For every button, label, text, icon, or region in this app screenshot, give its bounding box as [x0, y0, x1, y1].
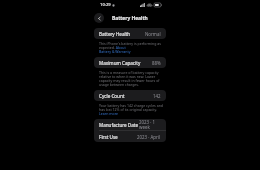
staticText: 2023 · April [137, 134, 161, 140]
staticText: Battery Health [112, 15, 148, 22]
button[interactable]: Manufacture Date [94, 119, 166, 130]
button[interactable]: Back [94, 13, 104, 23]
staticText: Manufacture Date [99, 122, 139, 128]
staticText: This is a measure of battery capacity re… [99, 70, 163, 87]
staticText: First Use [99, 134, 118, 140]
staticText: 10:29 [100, 2, 111, 8]
staticText: This iPhone's battery is performing as e… [99, 41, 163, 54]
staticText: Normal [145, 31, 161, 37]
staticText: Battery Health [99, 31, 131, 37]
staticText: 88% [152, 60, 161, 66]
staticText: Your battery has 142 charge cycles and h… [99, 103, 163, 116]
button[interactable]: Maximum Capacity [94, 57, 166, 68]
staticText: 142 [153, 93, 161, 99]
staticText: Cycle Count [99, 93, 125, 99]
button[interactable]: Battery Health [94, 28, 166, 39]
button[interactable]: Cycle Count [94, 90, 166, 101]
staticText: 2023 · 1 week [139, 119, 161, 130]
staticText: Maximum Capacity [99, 60, 141, 66]
button[interactable]: First Use [94, 131, 166, 142]
